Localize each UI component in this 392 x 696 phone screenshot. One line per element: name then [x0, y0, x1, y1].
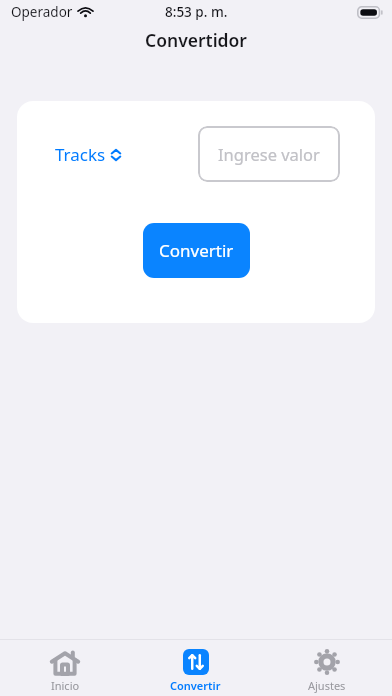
- other: Convertir: [183, 649, 209, 675]
- button[interactable]: Convertir: [143, 223, 250, 278]
- staticText: Convertir: [159, 239, 234, 262]
- button[interactable]: Convertir: [130, 644, 261, 693]
- button[interactable]: Ajustes: [261, 644, 392, 693]
- staticText: Convertidor: [145, 28, 247, 52]
- other: Inicio: [50, 650, 80, 675]
- staticText: Tracks: [55, 143, 106, 166]
- staticText: Ajustes: [308, 678, 346, 693]
- button[interactable]: Inicio: [0, 644, 130, 693]
- staticText: Operador: [11, 3, 73, 21]
- button[interactable]: Ingrese valor: [198, 126, 340, 182]
- staticText: 8:53 p. m.: [165, 3, 228, 21]
- staticText: Ingrese valor: [218, 143, 320, 165]
- other: Ajustes: [314, 649, 340, 675]
- staticText: Inicio: [51, 678, 80, 693]
- staticText: Convertir: [170, 678, 221, 693]
- button[interactable]: Tracks: [55, 143, 122, 166]
